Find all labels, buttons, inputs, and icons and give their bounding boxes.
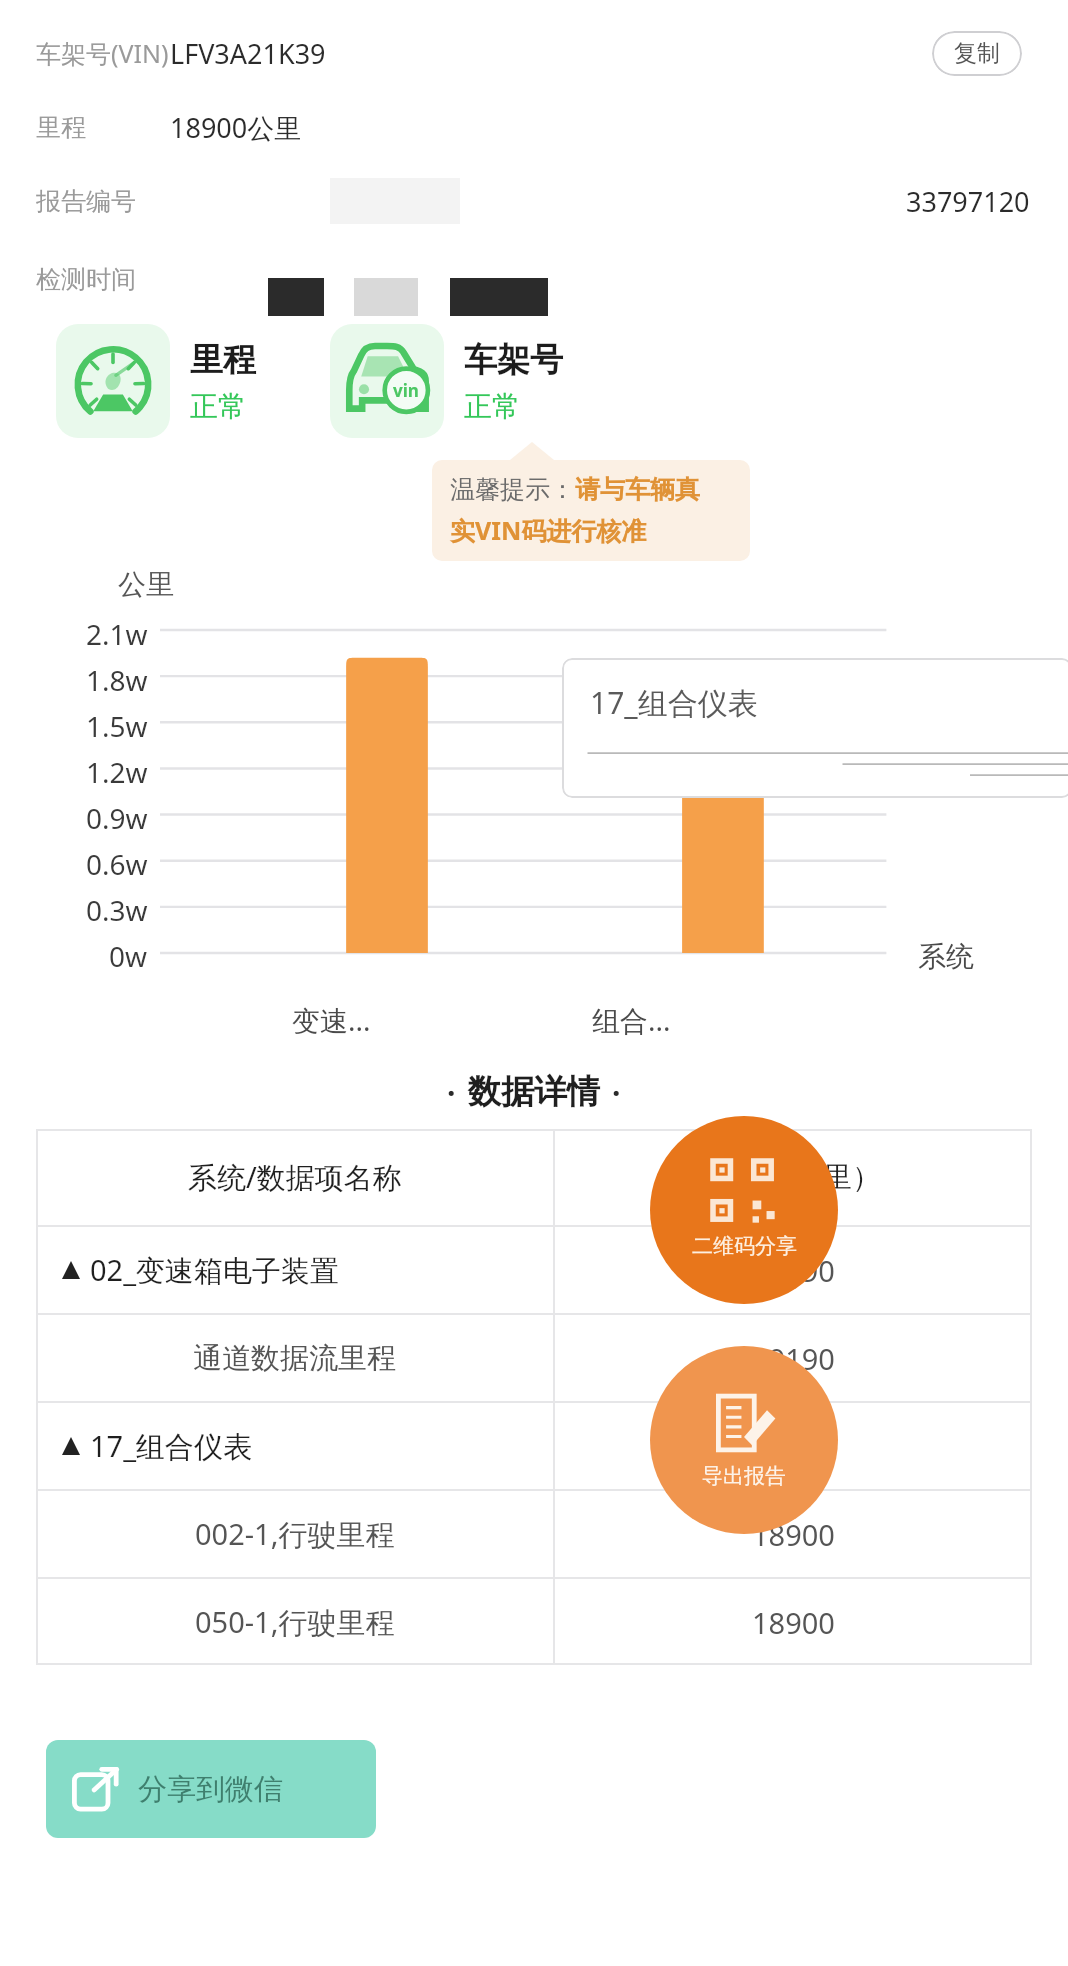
staticText: vin	[393, 379, 419, 402]
staticText: 1.8w	[86, 661, 148, 691]
staticText: ·	[612, 1072, 621, 1113]
staticText: 分享到微信	[138, 1771, 283, 1808]
staticText: 系统	[918, 939, 974, 974]
staticText: 18900公里	[170, 109, 302, 146]
button[interactable]: 里程	[56, 324, 256, 438]
button[interactable]: 002-1,行驶里程	[36, 1491, 1032, 1577]
button[interactable]: 通道数据流里程	[36, 1315, 1032, 1401]
staticText: 1.5w	[86, 707, 148, 737]
staticText: 导出报告	[702, 1463, 786, 1489]
staticText: 17_组合仪表	[90, 1426, 253, 1466]
staticText: 1.2w	[86, 753, 148, 783]
staticText: 18900	[752, 1603, 835, 1642]
staticText: 系统/数据项名称	[188, 1157, 402, 1197]
staticText: 实VIN码进行核准	[450, 513, 647, 547]
staticText: 里程	[190, 339, 256, 381]
staticText: 请与车辆真	[575, 474, 700, 505]
staticText: 车架号(VIN)	[36, 36, 169, 70]
button[interactable]: 导出报告	[650, 1346, 838, 1534]
staticText: 0.3w	[86, 891, 148, 921]
staticText: 车架号	[464, 339, 563, 381]
staticText: 复制	[954, 39, 1000, 68]
button[interactable]: 050-1,行驶里程	[36, 1579, 1032, 1665]
staticText: 19190	[752, 1339, 835, 1378]
staticText: 002-1,行驶里程	[195, 1514, 395, 1554]
staticText: 公里	[118, 567, 174, 602]
staticText: 检测时间	[36, 264, 136, 295]
button[interactable]: vin	[330, 324, 563, 438]
button[interactable]: 02_变速箱电子装置	[36, 1227, 1032, 1313]
staticText: 17_组合仪表	[590, 682, 758, 723]
staticText: ·	[447, 1072, 456, 1113]
staticText: 2.1w	[86, 615, 148, 645]
staticText: 18900	[752, 1427, 835, 1466]
staticText: 02_变速箱电子装置	[90, 1250, 340, 1290]
staticText: 二维码分享	[692, 1233, 797, 1259]
button[interactable]: 系统/数据项名称	[36, 1129, 1032, 1225]
staticText: 变速...	[292, 1001, 371, 1039]
staticText: 19190	[752, 1251, 835, 1290]
staticText: 报告编号	[36, 186, 136, 217]
staticText: 正常	[190, 389, 246, 424]
staticText: 正常	[464, 389, 520, 424]
staticText: 0.9w	[86, 799, 148, 829]
button[interactable]: 17_组合仪表	[36, 1403, 1032, 1489]
button[interactable]: 复制	[932, 31, 1022, 76]
staticText: 里程	[36, 112, 86, 143]
staticText: 050-1,行驶里程	[195, 1602, 395, 1642]
staticText: 0.6w	[86, 845, 148, 875]
staticText: LFV3A21K39	[170, 35, 326, 72]
staticText: 33797120	[906, 183, 1030, 220]
staticText: 0w	[109, 937, 148, 967]
staticText: 温馨提示：	[450, 474, 575, 505]
button[interactable]: 分享到微信	[46, 1740, 376, 1838]
button[interactable]: 17_组合仪表	[562, 658, 1068, 798]
staticText: 里程（公里）	[707, 1159, 881, 1196]
button[interactable]: 二维码分享	[650, 1116, 838, 1304]
staticText: 组合...	[592, 1001, 671, 1039]
staticText: 通道数据流里程	[193, 1340, 396, 1377]
staticText: 18900	[752, 1515, 835, 1554]
staticText: 数据详情	[468, 1071, 600, 1113]
